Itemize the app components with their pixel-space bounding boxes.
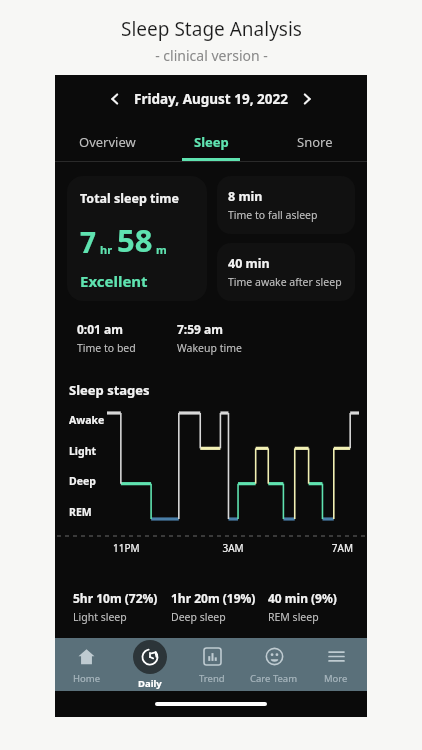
staticText: Deep sleep bbox=[171, 610, 226, 624]
button[interactable]: 5hr 10m (72%) bbox=[73, 590, 171, 624]
staticText: Care Team bbox=[250, 672, 298, 685]
button[interactable]: Snore bbox=[263, 123, 367, 161]
staticText: REM bbox=[69, 505, 92, 519]
staticText: Wakeup time bbox=[177, 341, 242, 355]
button[interactable]: Daily bbox=[118, 638, 181, 691]
button[interactable]: Trend bbox=[181, 638, 243, 691]
staticText: 7 bbox=[80, 223, 97, 261]
staticText: Deep bbox=[69, 474, 96, 488]
staticText: Sleep stages bbox=[69, 381, 150, 399]
staticText: 40 min bbox=[228, 255, 270, 272]
staticText: hr bbox=[100, 242, 113, 257]
button[interactable]: 40 min (9%) bbox=[268, 590, 357, 624]
staticText: More bbox=[324, 672, 348, 685]
staticText: Snore bbox=[297, 133, 333, 151]
staticText: - clinical version - bbox=[155, 46, 268, 65]
staticText: Light bbox=[69, 444, 97, 458]
button[interactable]: Next day bbox=[294, 86, 320, 112]
staticText: 3AM bbox=[193, 541, 273, 555]
staticText: Friday, August 19, 2022 bbox=[134, 90, 288, 108]
staticText: Sleep Stage Analysis bbox=[121, 16, 302, 42]
button[interactable]: Overview bbox=[55, 123, 159, 161]
button[interactable]: Total sleep time bbox=[67, 176, 207, 301]
button[interactable]: Home bbox=[55, 638, 118, 691]
button[interactable]: 8 min bbox=[217, 176, 355, 234]
staticText: 58 bbox=[117, 219, 153, 261]
button[interactable]: Previous day bbox=[102, 86, 128, 112]
staticText: Daily bbox=[138, 677, 162, 690]
button[interactable]: More bbox=[305, 638, 367, 691]
button[interactable]: 40 min bbox=[217, 243, 355, 301]
button[interactable]: Sleep bbox=[159, 123, 263, 161]
staticText: Awake bbox=[69, 413, 105, 427]
staticText: 1hr 20m (19%) bbox=[171, 590, 256, 606]
staticText: m bbox=[156, 242, 167, 257]
button[interactable]: 1hr 20m (19%) bbox=[171, 590, 268, 624]
staticText: Time to fall asleep bbox=[228, 208, 318, 222]
staticText: Sleep bbox=[194, 133, 229, 151]
staticText: Light sleep bbox=[73, 610, 127, 624]
staticText: 5hr 10m (72%) bbox=[73, 590, 158, 606]
staticText: Overview bbox=[79, 133, 136, 151]
staticText: Excellent bbox=[80, 271, 148, 291]
staticText: 7:59 am bbox=[177, 321, 223, 337]
staticText: Total sleep time bbox=[80, 190, 179, 207]
staticText: 11PM bbox=[113, 541, 193, 555]
staticText: 7AM bbox=[273, 541, 353, 555]
staticText: REM sleep bbox=[268, 610, 319, 624]
staticText: 8 min bbox=[228, 188, 263, 205]
staticText: Time awake after sleep bbox=[228, 275, 342, 289]
staticText: Home bbox=[73, 672, 101, 685]
staticText: 0:01 am bbox=[77, 321, 123, 337]
staticText: Time to bed bbox=[77, 341, 136, 355]
button[interactable]: Care Team bbox=[243, 638, 305, 691]
staticText: Trend bbox=[199, 672, 225, 685]
staticText: 40 min (9%) bbox=[268, 590, 337, 606]
